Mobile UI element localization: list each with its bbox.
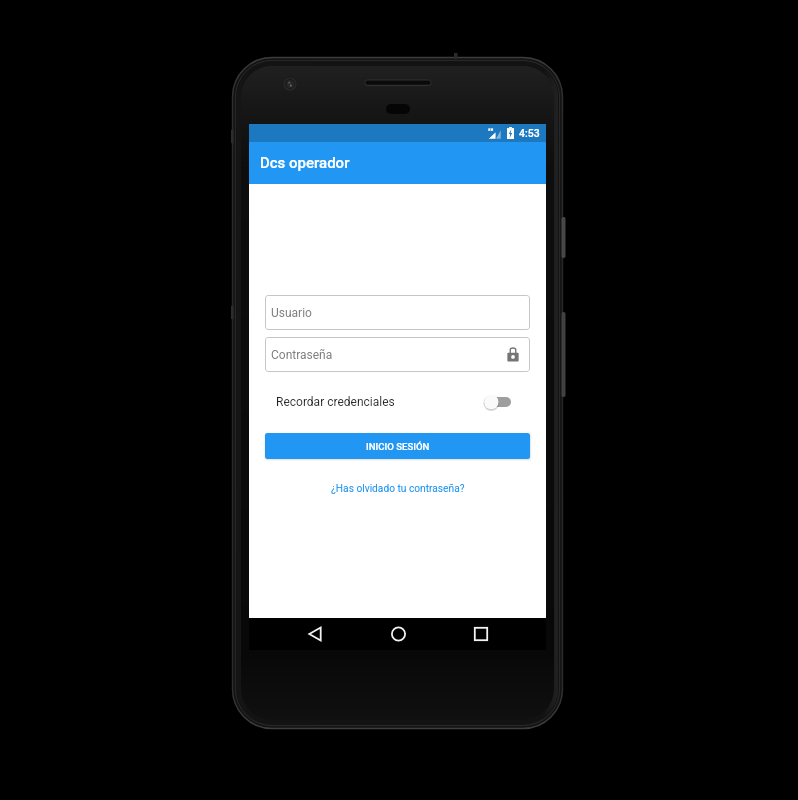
staticText: INICIO SESIÓN — [366, 441, 430, 452]
staticText: Usuario — [271, 306, 312, 320]
button[interactable]: Recordar credenciales — [276, 382, 519, 422]
button[interactable]: Recent apps — [447, 618, 546, 650]
staticText: Contraseña — [271, 348, 333, 362]
staticText: 4:53 — [519, 127, 540, 139]
staticText: Recordar credenciales — [276, 395, 395, 409]
button[interactable]: Usuario — [265, 295, 530, 330]
button[interactable]: INICIO SESIÓN — [265, 433, 530, 459]
staticText: Dcs operador — [260, 154, 350, 172]
button[interactable]: Back — [249, 618, 348, 650]
button[interactable]: Contraseña — [265, 337, 530, 372]
button[interactable]: Home — [348, 618, 447, 650]
button[interactable]: ¿Has olvidado tu contraseña? — [331, 483, 465, 495]
